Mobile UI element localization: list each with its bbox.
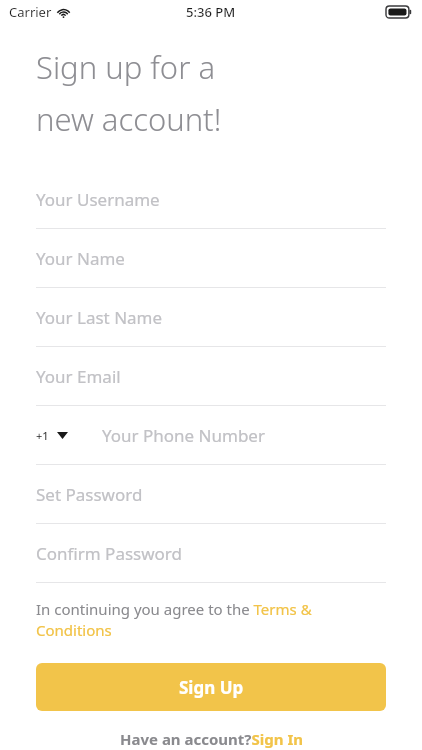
button[interactable]: Set Password xyxy=(36,465,386,524)
staticText: Your Email xyxy=(36,365,121,388)
button[interactable]: Your Email xyxy=(36,347,386,406)
button[interactable]: Sign Up xyxy=(36,663,386,711)
button[interactable]: Have an account?Sign In xyxy=(0,729,422,749)
staticText: Your Last Name xyxy=(36,306,163,329)
button[interactable]: Your Username xyxy=(36,170,386,229)
staticText: Your Phone Number xyxy=(102,424,265,447)
staticText: Sign Up xyxy=(179,676,244,699)
staticText: Your Username xyxy=(36,188,160,211)
staticText: Your Name xyxy=(36,247,125,270)
staticText: Sign up for a xyxy=(36,46,216,88)
button[interactable]: Confirm Password xyxy=(36,524,386,583)
button[interactable]: Your Name xyxy=(36,229,386,288)
staticText: Set Password xyxy=(36,483,143,506)
button[interactable]: Select country code xyxy=(36,428,68,443)
button[interactable]: Your Last Name xyxy=(36,288,386,347)
staticText: Confirm Password xyxy=(36,542,182,565)
staticText: Have an account?Sign In xyxy=(120,729,303,749)
button[interactable]: In continuing you agree to the Terms & C… xyxy=(36,599,386,641)
staticText: In continuing you agree to the Terms & C… xyxy=(36,599,386,641)
button[interactable]: Your Phone Number xyxy=(102,406,386,464)
staticText: Carrier xyxy=(9,3,52,21)
staticText: 5:36 PM xyxy=(186,3,236,21)
staticText: new account! xyxy=(36,98,222,140)
staticText: +1 xyxy=(36,428,49,443)
